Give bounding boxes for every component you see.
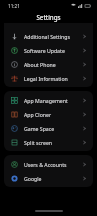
button[interactable]: Game Space (4, 121, 93, 135)
staticText: Google (24, 175, 42, 182)
button[interactable]: Users & Accounts (4, 157, 93, 171)
staticText: Split screen (24, 139, 53, 146)
staticText: App Management (24, 97, 68, 104)
button[interactable]: Google (4, 171, 93, 185)
button[interactable]: Additional Settings (4, 29, 93, 43)
staticText: Legal Information (24, 75, 68, 82)
button[interactable]: Software Update (4, 43, 93, 57)
button[interactable]: About Phone (4, 57, 93, 71)
staticText: 11:21 (8, 3, 20, 9)
button[interactable]: App Management (4, 93, 93, 107)
button[interactable]: App Cloner (4, 107, 93, 121)
staticText: Software Update (24, 47, 65, 54)
staticText: App Cloner (24, 111, 52, 118)
staticText: About Phone (24, 61, 56, 68)
staticText: Settings (36, 13, 61, 21)
staticText: Game Space (24, 125, 55, 132)
button[interactable]: Legal Information (4, 71, 93, 85)
button[interactable]: Split screen (4, 135, 93, 149)
staticText: Users & Accounts (24, 161, 67, 168)
staticText: Additional Settings (24, 33, 70, 40)
